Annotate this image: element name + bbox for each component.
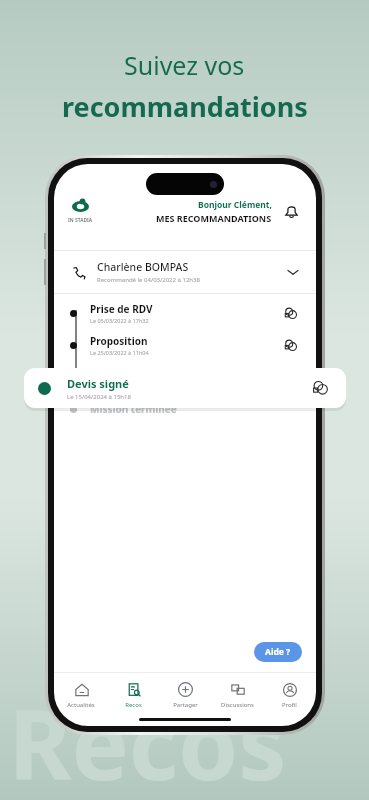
button[interactable]: Notifications	[280, 200, 302, 222]
staticText: Mission terminée	[90, 402, 177, 416]
staticText: Bonjour Clément,	[198, 199, 272, 211]
button[interactable]: Aide ?	[254, 642, 302, 662]
staticText: Le 15/04/2024 à 15h18	[67, 393, 131, 401]
staticText: Recommandé le 04/03/2022 à 12h38	[97, 276, 200, 284]
staticText: Actualités	[67, 701, 95, 709]
button[interactable]: Discuter	[308, 376, 332, 400]
button[interactable]: Prise de RDV	[54, 302, 316, 324]
button[interactable]: Actualités	[56, 681, 106, 709]
staticText: Discussions	[221, 701, 254, 709]
staticText: Recos	[125, 701, 142, 709]
staticText: Proposition	[90, 334, 148, 348]
button[interactable]: Charlène BOMPAS	[54, 251, 316, 293]
staticText: Prise de RDV	[90, 302, 153, 316]
staticText: recommandations	[62, 88, 308, 125]
staticText: Charlène BOMPAS	[97, 260, 189, 274]
staticText: Devis signé	[67, 376, 129, 391]
button[interactable]: Discussions	[212, 681, 262, 709]
button[interactable]: Partager	[160, 681, 210, 709]
staticText: IN STADIA	[68, 217, 93, 224]
button[interactable]: Développer	[286, 265, 300, 279]
staticText: Profil	[282, 701, 297, 709]
button[interactable]: Mission terminée	[54, 402, 316, 416]
staticText: Partager	[173, 701, 198, 709]
staticText: Suivez vos	[124, 48, 245, 82]
staticText: Le 05/03/2022 à 17h32	[90, 317, 149, 324]
staticText: MES RECOMMANDATIONS	[156, 212, 272, 224]
staticText: Le 25/03/2022 à 11h04	[90, 349, 149, 356]
button[interactable]: Recos	[108, 681, 158, 709]
button[interactable]: Discuter	[280, 335, 300, 355]
button[interactable]: Discuter	[280, 303, 300, 323]
button[interactable]: Proposition	[54, 334, 316, 356]
button[interactable]: Devis signé	[24, 368, 346, 408]
button[interactable]: Profil	[264, 681, 314, 709]
staticText: Aide ?	[265, 646, 291, 658]
staticText: Recos	[8, 677, 287, 800]
